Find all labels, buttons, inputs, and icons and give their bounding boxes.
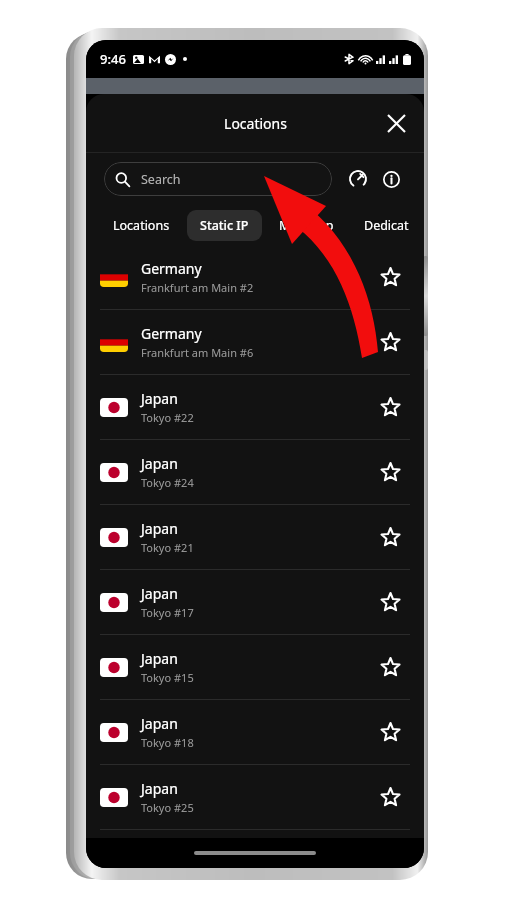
staticText: Germany bbox=[141, 259, 202, 278]
staticText: Tokyo #22 bbox=[141, 410, 194, 425]
staticText: Tokyo #24 bbox=[141, 475, 194, 490]
staticText: Tokyo #25 bbox=[141, 800, 194, 815]
staticText: Japan bbox=[141, 714, 178, 733]
staticText: Germany bbox=[141, 324, 202, 343]
button[interactable]: Static IP bbox=[187, 210, 262, 241]
staticText: Japan bbox=[141, 389, 178, 408]
staticText: Japan bbox=[141, 649, 178, 668]
staticText: MultiHop bbox=[279, 217, 334, 234]
staticText: Tokyo #15 bbox=[141, 670, 194, 685]
button[interactable]: Japan bbox=[86, 375, 424, 439]
button[interactable]: Favourite Japan Tokyo #25 bbox=[370, 777, 410, 817]
button[interactable]: Close bbox=[376, 103, 416, 143]
staticText: Japan bbox=[141, 779, 178, 798]
staticText: Search bbox=[141, 171, 181, 188]
button[interactable]: Japan bbox=[86, 765, 424, 829]
button[interactable]: Favourite Japan Tokyo #22 bbox=[370, 387, 410, 427]
staticText: Japan bbox=[141, 454, 178, 473]
button[interactable]: Favourite Japan Tokyo #17 bbox=[370, 582, 410, 622]
staticText: Tokyo #17 bbox=[141, 605, 194, 620]
button[interactable]: Japan bbox=[86, 570, 424, 634]
button[interactable]: Dedicated bbox=[351, 210, 424, 241]
button[interactable]: MultiHop bbox=[266, 210, 347, 241]
button[interactable]: Favourite Japan Tokyo #24 bbox=[370, 452, 410, 492]
button[interactable]: Japan bbox=[86, 440, 424, 504]
button[interactable]: Japan bbox=[86, 505, 424, 569]
button[interactable]: Info bbox=[376, 164, 406, 194]
button[interactable]: Favourite Japan Tokyo #18 bbox=[370, 712, 410, 752]
button[interactable]: Locations bbox=[100, 210, 183, 241]
button[interactable]: Favourite Germany Frankfurt am Main #2 bbox=[370, 257, 410, 297]
staticText: Static IP bbox=[200, 217, 249, 234]
staticText: 9:46 bbox=[100, 50, 126, 68]
button[interactable]: Favourite Japan Tokyo #15 bbox=[370, 647, 410, 687]
button[interactable]: Favourite Japan Tokyo #21 bbox=[370, 517, 410, 557]
staticText: Frankfurt am Main #2 bbox=[141, 280, 254, 295]
button[interactable]: Japan bbox=[86, 700, 424, 764]
button[interactable]: Germany bbox=[86, 245, 424, 309]
staticText: Locations bbox=[224, 114, 287, 133]
staticText: Tokyo #21 bbox=[141, 540, 194, 555]
staticText: Locations bbox=[113, 217, 170, 234]
button[interactable]: Search bbox=[104, 162, 332, 196]
staticText: Tokyo #18 bbox=[141, 735, 194, 750]
button[interactable]: Germany bbox=[86, 310, 424, 374]
button[interactable]: Japan bbox=[86, 635, 424, 699]
staticText: Dedicated bbox=[364, 217, 411, 234]
button[interactable]: Speed test bbox=[343, 164, 373, 194]
staticText: Frankfurt am Main #6 bbox=[141, 345, 254, 360]
button[interactable]: Favourite Germany Frankfurt am Main #6 bbox=[370, 322, 410, 362]
staticText: Japan bbox=[141, 584, 178, 603]
staticText: Japan bbox=[141, 519, 178, 538]
